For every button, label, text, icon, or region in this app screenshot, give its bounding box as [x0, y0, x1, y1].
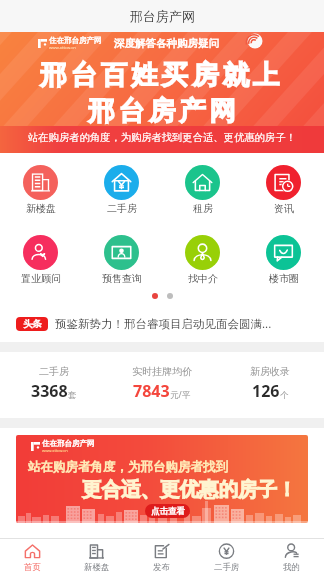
staticText: 找中介 [188, 272, 218, 285]
button[interactable]: 租房 [162, 165, 243, 215]
staticText: 邢台房产网 [86, 94, 238, 127]
staticText: 套 [68, 390, 77, 401]
staticText: 站在购房者角度，为邢台购房者找到 [28, 459, 228, 475]
button[interactable]: 发布 [129, 539, 194, 576]
staticText: 7843 [133, 380, 170, 402]
staticText: 二手房 [39, 365, 69, 378]
button[interactable]: 二手房 [81, 165, 162, 215]
staticText: 站在购房者的角度，为购房者找到更合适、更优惠的房子！ [28, 131, 296, 144]
staticText: 租房 [193, 202, 213, 215]
staticText: 预鉴新势力！邢台睿项目启动见面会圆满... [55, 316, 272, 332]
button[interactable]: 二手房 [0, 352, 108, 418]
staticText: 新房收录 [250, 365, 290, 378]
button[interactable]: 预售查询 [81, 235, 162, 285]
button[interactable]: 新楼盘 [0, 165, 81, 215]
staticText: 首页 [24, 562, 41, 573]
button[interactable]: 实时挂牌均价 [108, 352, 216, 418]
staticText: 住在邢台房产网 [42, 439, 95, 448]
button[interactable]: 住在邢台房产网 [16, 435, 308, 523]
button[interactable]: 点击查看 [145, 504, 190, 518]
staticText: www.xttcw.cn [42, 448, 68, 453]
staticText: 发布 [153, 562, 170, 573]
staticText: 住在邢台房产网 [49, 36, 102, 45]
button[interactable]: 二手房 [194, 539, 259, 576]
staticText: 元/平 [170, 389, 191, 401]
staticText: 点击查看 [151, 506, 185, 517]
staticText: 新楼盘 [26, 202, 56, 215]
staticText: 楼市圈 [269, 272, 299, 285]
staticText: www.xttcw.cn [49, 45, 76, 51]
button[interactable]: 新房收录 [216, 352, 324, 418]
button[interactable]: 找中介 [162, 235, 243, 285]
staticText: 新楼盘 [84, 562, 110, 573]
staticText: 二手房 [107, 202, 137, 215]
staticText: 更合适、更优惠的房子！ [82, 477, 297, 502]
staticText: 头条 [23, 318, 42, 330]
staticText: 实时挂牌均价 [132, 365, 192, 378]
staticText: 置业顾问 [21, 272, 61, 285]
button[interactable]: 我的 [259, 539, 324, 576]
staticText: 邢台百姓买房就上 [40, 58, 284, 91]
button[interactable]: 楼市圈 [243, 235, 324, 285]
staticText: 126 [252, 380, 280, 402]
staticText: 二手房 [214, 562, 240, 573]
button[interactable]: 新楼盘 [64, 539, 129, 576]
staticText: 个 [280, 390, 289, 401]
button[interactable]: 资讯 [243, 165, 324, 215]
button[interactable]: 头条 [0, 306, 324, 342]
staticText: 我的 [283, 562, 300, 573]
staticText: 3368 [31, 380, 68, 402]
staticText: 资讯 [274, 202, 294, 215]
button[interactable]: 首页 [0, 539, 64, 576]
button[interactable]: 置业顾问 [0, 235, 81, 285]
staticText: 预售查询 [102, 272, 142, 285]
staticText: 深度解答各种购房疑问 [114, 37, 219, 50]
staticText: 邢台房产网 [130, 8, 195, 24]
